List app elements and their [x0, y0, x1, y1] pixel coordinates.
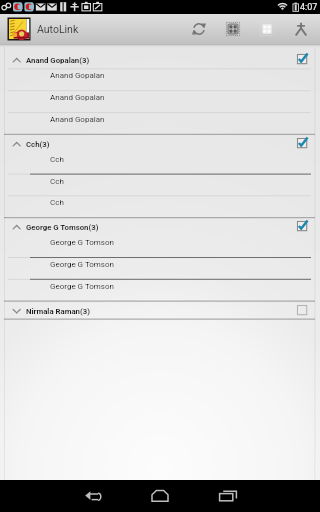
staticText: George G Tomson	[50, 282, 114, 291]
button[interactable]: Home	[136, 480, 184, 512]
staticText: George G Tomson	[50, 238, 114, 247]
button[interactable]: Recents	[204, 480, 252, 512]
button[interactable]: Share	[284, 14, 318, 44]
staticText: Anand Gopalan(3)	[26, 56, 90, 65]
button[interactable]: Back	[68, 480, 116, 512]
staticText: Anand Gopalan	[50, 71, 105, 80]
button[interactable]: Select all	[216, 14, 250, 44]
staticText: 4:07	[300, 2, 318, 13]
staticText: Anand Gopalan	[50, 115, 105, 124]
button[interactable]: Deselect all	[250, 14, 284, 44]
staticText: Cch	[50, 198, 64, 207]
button[interactable]: Cch	[0, 152, 320, 174]
button[interactable]: Selected	[297, 221, 311, 235]
button[interactable]: Refresh	[182, 14, 216, 44]
button[interactable]: Nirmala Raman(3)	[0, 302, 320, 319]
button[interactable]: Anand Gopalan(3)	[0, 51, 320, 68]
staticText: George G Tomson(3)	[26, 223, 99, 232]
staticText: Cch(3)	[26, 140, 50, 149]
button[interactable]: George G Tomson	[0, 235, 320, 257]
button[interactable]: Selected	[297, 54, 311, 68]
button[interactable]: Anand Gopalan	[0, 68, 320, 90]
staticText: Cch	[50, 155, 64, 164]
staticText: George G Tomson	[50, 260, 114, 269]
staticText: Cch	[50, 177, 64, 186]
button[interactable]: George G Tomson	[0, 257, 320, 279]
button[interactable]: Anand Gopalan	[0, 112, 320, 134]
staticText: Anand Gopalan	[50, 93, 105, 102]
button[interactable]: Cch	[0, 195, 320, 217]
staticText: AutoLink	[37, 23, 79, 35]
button[interactable]: George G Tomson	[0, 279, 320, 301]
button[interactable]: Cch(3)	[0, 135, 320, 152]
staticText: Nirmala Raman(3)	[26, 307, 90, 316]
button[interactable]: Selected	[297, 138, 311, 152]
button[interactable]: George G Tomson(3)	[0, 218, 320, 235]
button[interactable]: Cch	[0, 174, 320, 196]
button[interactable]: Anand Gopalan	[0, 90, 320, 112]
button[interactable]: Not selected	[297, 305, 311, 319]
